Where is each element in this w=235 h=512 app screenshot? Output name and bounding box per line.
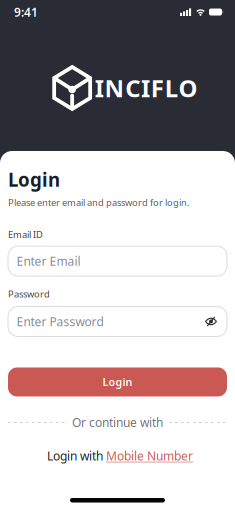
staticText: Email ID	[8, 228, 43, 241]
staticText: Login with	[47, 448, 103, 464]
staticText: Login	[102, 375, 132, 389]
button[interactable]: Login	[8, 367, 227, 396]
staticText: Enter Password	[16, 313, 103, 329]
staticText: Or continue with	[72, 414, 163, 430]
staticText: Please enter email and password for logi…	[8, 196, 190, 209]
button[interactable]: Mobile Number	[106, 448, 193, 464]
staticText: Mobile Number	[106, 448, 193, 464]
staticText: 9:41	[14, 4, 38, 20]
staticText: Enter Email	[16, 253, 80, 269]
staticText: Login	[8, 167, 60, 192]
button[interactable]: Enter Email	[8, 246, 227, 276]
staticText: Password	[8, 288, 50, 300]
button[interactable]: Show password	[205, 316, 217, 326]
button[interactable]: Enter Password	[8, 306, 227, 336]
staticText: INCIFLO	[95, 72, 197, 104]
